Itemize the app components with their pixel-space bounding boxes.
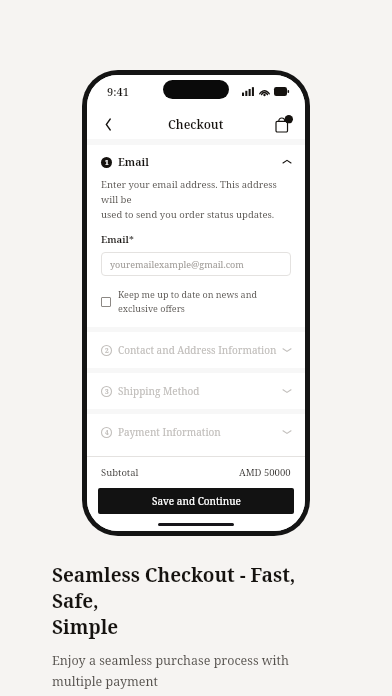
staticText: youremailexample@gmail.com [110, 258, 244, 270]
staticText: Email [118, 155, 149, 169]
button[interactable]: Keep me up to date on news and exclusive… [101, 288, 291, 315]
staticText: Save and Continue [152, 494, 241, 508]
staticText: Seamless Checkout - Fast, Safe, Simple [52, 562, 340, 640]
staticText: 3 [105, 387, 109, 396]
staticText: Subtotal [101, 466, 139, 479]
staticText: Payment Information [118, 425, 221, 439]
button[interactable]: Cart [271, 111, 297, 137]
staticText: Enjoy a seamless purchase process with m… [52, 652, 340, 696]
staticText: Contact and Address Information [118, 343, 277, 357]
staticText: Keep me up to date on news and exclusive… [118, 288, 257, 315]
staticText: Email* [101, 233, 134, 246]
staticText: 9:41 [107, 84, 129, 99]
button[interactable]: 2 [87, 332, 305, 368]
button[interactable]: 1 [101, 155, 291, 169]
staticText: 1 [105, 158, 109, 167]
button[interactable]: 4 [87, 414, 305, 450]
button[interactable]: youremailexample@gmail.com [101, 252, 291, 276]
button[interactable]: Save and Continue [98, 488, 294, 514]
button[interactable]: Back [95, 111, 121, 137]
staticText: 4 [105, 428, 109, 437]
staticText: Shipping Method [118, 384, 200, 398]
staticText: Enter your email address. This address w… [101, 178, 291, 221]
button[interactable]: 3 [87, 373, 305, 409]
staticText: Checkout [168, 116, 224, 132]
staticText: 2 [105, 346, 109, 355]
staticText: AMD 50000 [239, 466, 291, 479]
